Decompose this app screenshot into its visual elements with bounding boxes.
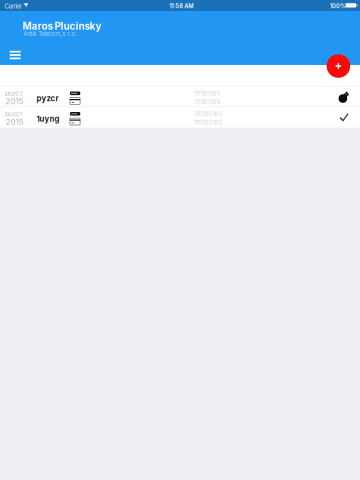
button[interactable]: Menu	[4, 45, 27, 65]
button[interactable]: 26.OCT	[0, 87, 360, 107]
button[interactable]: Add	[327, 54, 350, 78]
staticText: 1uyng	[37, 114, 60, 124]
staticText: 2015	[6, 96, 24, 106]
staticText: Carrier	[5, 3, 22, 10]
staticText: pyzcr	[37, 94, 59, 103]
staticText: 26.OCT	[4, 111, 22, 118]
staticText: 100%	[330, 3, 346, 10]
staticText: 26.OCT	[4, 91, 22, 97]
staticText: 2015	[6, 117, 24, 127]
staticText: 1111280185	[194, 119, 222, 126]
staticText: Antik Telecom,s.r.o.	[23, 30, 77, 37]
staticText: 1111181286	[194, 99, 221, 106]
button[interactable]: 26.OCT	[0, 107, 360, 128]
staticText: Maros Plucinsky	[22, 20, 101, 32]
staticText: 1111280185	[194, 111, 222, 118]
staticText: 1111181286	[194, 90, 221, 97]
staticText: 11:58 AM	[169, 3, 193, 10]
